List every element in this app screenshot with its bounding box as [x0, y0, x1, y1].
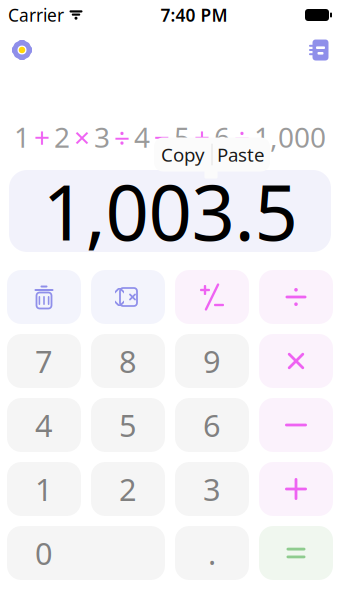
staticText: × — [74, 118, 90, 156]
staticText: 2 — [119, 469, 137, 509]
button[interactable]: 9 — [175, 334, 249, 388]
button[interactable]: Copy — [154, 137, 211, 171]
staticText: 6 — [203, 405, 221, 445]
button[interactable]: Key — [259, 526, 333, 580]
button[interactable]: 2 — [91, 462, 165, 516]
staticText: 8 — [119, 341, 137, 381]
staticText: 0 — [35, 533, 53, 573]
button[interactable]: 7 — [7, 334, 81, 388]
staticText: 1 — [35, 469, 53, 509]
staticText: 9 — [203, 341, 221, 381]
button[interactable]: . — [175, 526, 249, 580]
staticText: Carrier — [8, 3, 64, 26]
staticText: 5 — [174, 118, 190, 156]
staticText: 1 — [14, 118, 30, 156]
staticText: ÷ — [234, 118, 250, 156]
button[interactable]: 0 — [7, 526, 165, 580]
staticText: 7 — [35, 341, 53, 381]
staticText: + — [194, 118, 210, 156]
staticText: 6 — [214, 118, 230, 156]
staticText: Paste — [217, 142, 265, 167]
button[interactable]: 1 — [7, 462, 81, 516]
staticText: 7:40 PM — [160, 3, 227, 26]
staticText: . — [208, 533, 216, 573]
staticText: 3 — [203, 469, 221, 509]
staticText: 4 — [134, 118, 150, 156]
button[interactable]: Key — [91, 270, 165, 324]
staticText: 2 — [54, 118, 70, 156]
button[interactable]: 4 — [7, 398, 81, 452]
button[interactable]: Key — [259, 334, 333, 388]
staticText: 1,000 — [254, 118, 326, 156]
button[interactable]: Settings — [2, 32, 42, 68]
staticText: ÷ — [114, 118, 130, 156]
button[interactable]: Key — [175, 270, 249, 324]
button[interactable]: Key — [259, 398, 333, 452]
button[interactable]: Key — [7, 270, 81, 324]
staticText: 4 — [35, 405, 53, 445]
staticText: 5 — [119, 405, 137, 445]
staticText: 3 — [94, 118, 110, 156]
button[interactable]: Key — [259, 270, 333, 324]
staticText: 1,003.5 — [42, 160, 297, 261]
button[interactable]: 6 — [175, 398, 249, 452]
staticText: + — [34, 118, 50, 156]
button[interactable]: 3 — [175, 462, 249, 516]
button[interactable]: Key — [259, 462, 333, 516]
button[interactable]: 5 — [91, 398, 165, 452]
staticText: Copy — [161, 142, 205, 167]
staticText: − — [154, 118, 170, 156]
button[interactable]: Paste — [212, 137, 269, 171]
button[interactable]: History — [298, 32, 338, 68]
button[interactable]: 8 — [91, 334, 165, 388]
